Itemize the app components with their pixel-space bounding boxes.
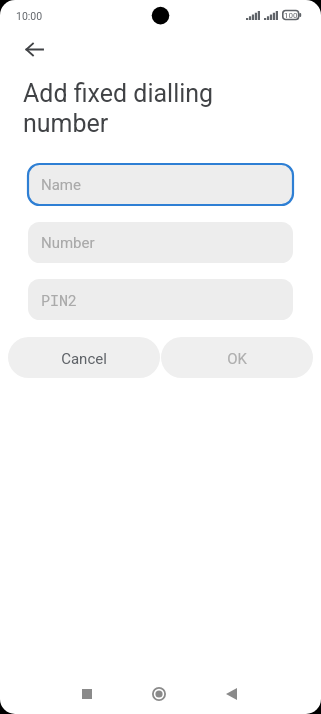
button[interactable]: Cancel: [8, 337, 160, 378]
staticText: PIN2: [41, 290, 78, 310]
button[interactable]: Number: [28, 222, 293, 263]
staticText: OK: [227, 350, 247, 368]
button[interactable]: Back: [195, 674, 267, 714]
button[interactable]: PIN2: [28, 279, 293, 320]
staticText: 10:00: [16, 10, 43, 22]
button[interactable]: OK: [161, 337, 313, 378]
staticText: Add fixed dialling number: [23, 79, 259, 138]
button[interactable]: Recent apps: [51, 674, 123, 714]
button[interactable]: Name: [28, 164, 293, 205]
button[interactable]: Navigate up: [15, 30, 53, 68]
staticText: Number: [41, 234, 95, 252]
staticText: 100: [284, 11, 298, 20]
button[interactable]: Home: [123, 674, 195, 714]
staticText: Name: [41, 176, 81, 194]
staticText: Cancel: [61, 350, 107, 368]
